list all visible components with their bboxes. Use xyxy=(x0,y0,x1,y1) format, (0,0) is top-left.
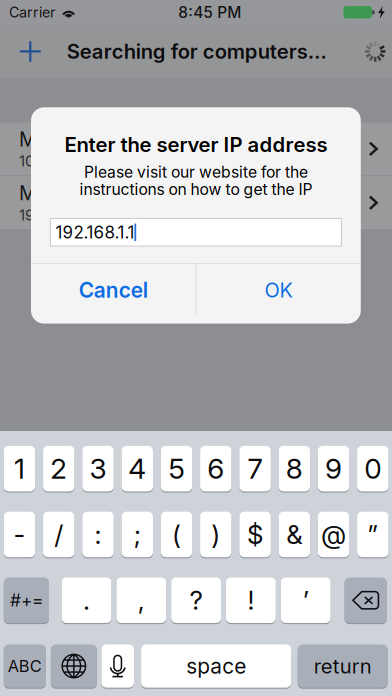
staticText: OK xyxy=(265,278,293,302)
button[interactable]: 0 xyxy=(357,445,388,492)
staticText: 7 xyxy=(248,452,263,486)
staticText: Mac mini xyxy=(19,181,102,205)
staticText: ( xyxy=(172,519,181,550)
staticText: 3 xyxy=(89,452,106,486)
button[interactable]: - xyxy=(4,511,35,558)
button[interactable]: Dictation xyxy=(101,644,134,688)
staticText: MacBook Pro xyxy=(19,127,143,151)
button[interactable]: 8 xyxy=(279,445,310,492)
button[interactable]: : xyxy=(82,511,114,558)
button[interactable]: $ xyxy=(239,511,271,558)
staticText: 2 xyxy=(50,452,67,486)
button[interactable]: 7 xyxy=(239,445,271,492)
staticText: 6 xyxy=(207,452,224,486)
staticText: 8:45 PM xyxy=(178,3,241,22)
button[interactable]: Mac mini xyxy=(0,176,392,230)
button[interactable]: & xyxy=(279,511,310,558)
staticText: ’ xyxy=(303,584,309,616)
button[interactable]: 2 xyxy=(43,445,74,492)
staticText: : xyxy=(94,519,101,550)
staticText: 8 xyxy=(286,452,303,486)
button[interactable]: 4 xyxy=(122,445,153,492)
staticText: return xyxy=(314,654,372,678)
button[interactable]: ” xyxy=(357,511,388,558)
staticText: space xyxy=(186,653,246,679)
staticText: Cancel xyxy=(79,277,148,303)
staticText: , xyxy=(138,584,145,616)
button[interactable]: 1 xyxy=(4,445,35,492)
staticText: instructions on how to get the IP xyxy=(79,180,312,199)
button[interactable]: OK xyxy=(196,264,361,316)
button[interactable]: ! xyxy=(226,577,276,624)
staticText: Please visit our website for the xyxy=(84,162,308,181)
button[interactable]: 3 xyxy=(82,445,114,492)
button[interactable]: ’ xyxy=(281,577,331,624)
staticText: ) xyxy=(211,519,220,550)
button[interactable]: Cancel xyxy=(31,264,195,316)
staticText: 192.168.1.7 xyxy=(19,206,91,224)
button[interactable]: MacBook Pro xyxy=(0,122,392,176)
button[interactable]: 5 xyxy=(161,445,192,492)
staticText: 1 xyxy=(14,452,25,486)
staticText: ” xyxy=(367,519,378,550)
button[interactable]: , xyxy=(116,577,166,624)
button[interactable]: / xyxy=(43,511,74,558)
staticText: ! xyxy=(247,584,254,616)
staticText: ? xyxy=(190,584,203,616)
button[interactable]: space xyxy=(141,644,291,688)
staticText: Enter the server IP address xyxy=(64,132,327,157)
button[interactable]: #+= xyxy=(4,577,49,624)
button[interactable]: . xyxy=(62,577,111,624)
button[interactable]: Next keyboard xyxy=(51,644,97,688)
button[interactable]: ( xyxy=(161,511,192,558)
staticText: . xyxy=(83,584,90,616)
button[interactable]: 6 xyxy=(200,445,231,492)
staticText: 0 xyxy=(364,452,381,486)
button[interactable]: ABC xyxy=(4,644,46,688)
staticText: 9 xyxy=(325,452,342,486)
staticText: 5 xyxy=(168,452,184,486)
button[interactable]: return xyxy=(298,644,388,688)
staticText: 4 xyxy=(128,452,146,486)
staticText: ABC xyxy=(8,656,42,676)
button[interactable]: @ xyxy=(318,511,349,558)
staticText: / xyxy=(54,519,63,550)
staticText: Searching for computers… xyxy=(67,39,327,64)
button[interactable]: ) xyxy=(200,511,231,558)
staticText: $ xyxy=(247,519,263,550)
staticText: ; xyxy=(134,519,141,550)
staticText: @ xyxy=(321,519,346,550)
staticText: 192.168.1.1 xyxy=(55,222,134,243)
staticText: #+= xyxy=(10,590,43,611)
button[interactable]: Delete xyxy=(345,577,387,624)
staticText: Carrier xyxy=(9,4,55,21)
staticText: 10.0.1.12 xyxy=(19,152,74,170)
button[interactable]: ; xyxy=(122,511,153,558)
button[interactable]: Add xyxy=(10,31,51,72)
button[interactable]: ? xyxy=(171,577,221,624)
staticText: - xyxy=(13,519,25,550)
button[interactable]: 9 xyxy=(318,445,349,492)
staticText: & xyxy=(286,519,302,550)
